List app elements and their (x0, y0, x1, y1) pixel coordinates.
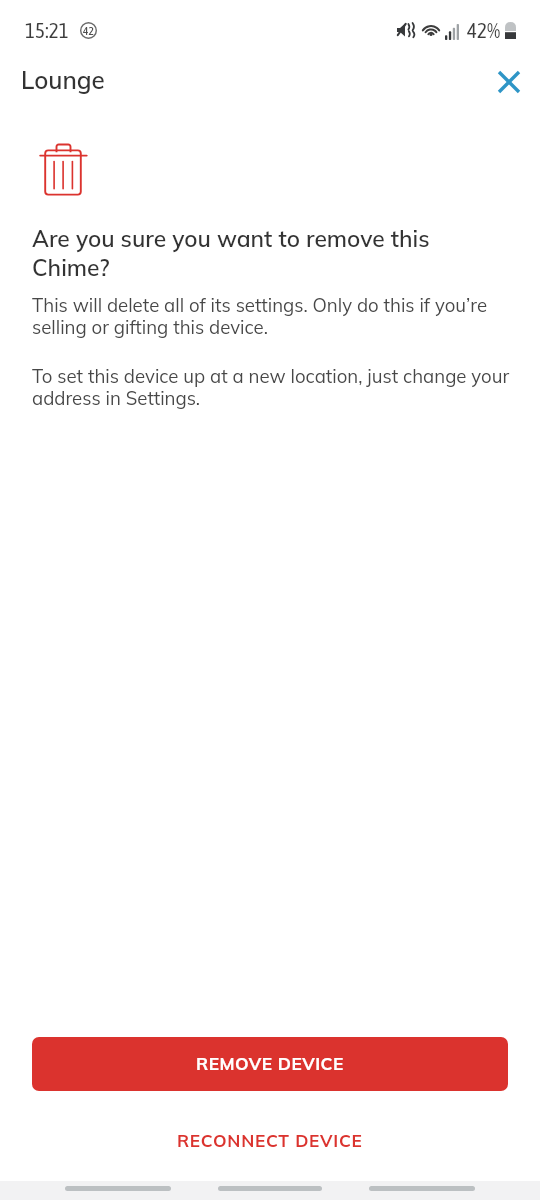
staticText: RECONNECT DEVICE (177, 1130, 363, 1152)
staticText: Are you sure you want to remove this Chi… (32, 224, 513, 282)
button[interactable]: Close (486, 59, 531, 104)
staticText: Lounge (21, 65, 105, 95)
staticText: 42% (467, 18, 501, 42)
button[interactable]: Back (369, 1186, 475, 1191)
staticText: This will delete all of its settings. On… (32, 293, 513, 339)
staticText: To set this device up at a new location,… (32, 364, 513, 410)
button[interactable]: Recents (65, 1186, 171, 1191)
staticText: 42 (83, 24, 94, 37)
button[interactable]: Home (218, 1186, 322, 1191)
button[interactable]: RECONNECT DEVICE (0, 1117, 540, 1165)
staticText: 15:21 (25, 18, 69, 42)
button[interactable]: REMOVE DEVICE (32, 1037, 508, 1091)
staticText: REMOVE DEVICE (196, 1053, 344, 1075)
